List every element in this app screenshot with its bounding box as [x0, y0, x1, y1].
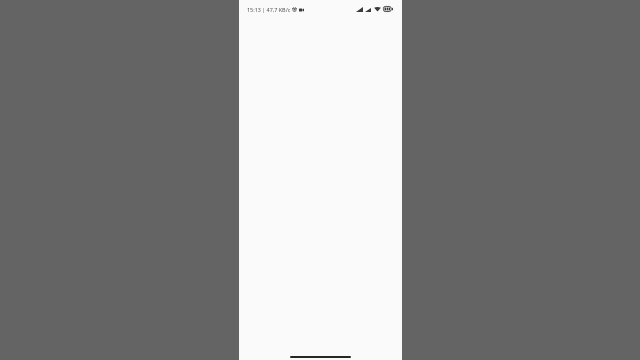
other: Mobile signal SIM 1 [356, 7, 363, 12]
staticText: 15:13 | 47,7 KB/c [247, 6, 291, 13]
other: Screen recording [299, 8, 304, 12]
button[interactable]: Home [290, 356, 351, 358]
other: Mobile signal SIM 2 [365, 8, 371, 12]
other: Wi-Fi [374, 6, 381, 12]
other: Alarm set [292, 7, 297, 12]
other: Battery [383, 6, 393, 12]
